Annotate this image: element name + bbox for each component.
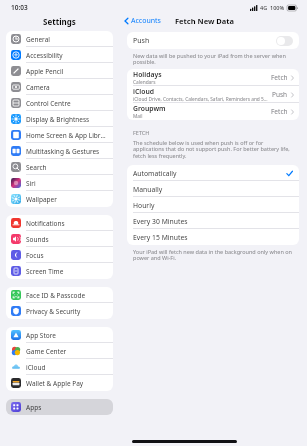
staticText: Every 30 Minutes <box>133 217 188 226</box>
button[interactable]: Screen Time <box>6 263 113 279</box>
button[interactable]: Control Centre <box>6 95 113 111</box>
button[interactable]: General <box>6 31 113 47</box>
staticText: Accounts <box>131 16 161 26</box>
button[interactable]: Sounds <box>6 231 113 247</box>
button[interactable]: Groupwm <box>127 103 299 120</box>
staticText: Hourly <box>133 201 155 210</box>
button[interactable]: Accounts <box>122 15 163 27</box>
button[interactable]: Accessibility <box>6 47 113 63</box>
staticText: Face ID & Passcode <box>26 291 86 300</box>
staticText: App Store <box>26 331 56 340</box>
staticText: Home Screen & App Library <box>26 131 109 140</box>
button[interactable]: Wallet & Apple Pay <box>6 375 113 391</box>
button[interactable]: Focus <box>6 247 113 263</box>
button[interactable]: Display & Brightness <box>6 111 113 127</box>
staticText: Every 15 Minutes <box>133 233 188 242</box>
staticText: Your iPad will fetch new data in the bac… <box>133 248 293 262</box>
button[interactable]: Manually <box>127 181 299 197</box>
staticText: Privacy & Security <box>26 307 81 316</box>
staticText: Fetch New Data <box>175 16 235 26</box>
staticText: Holidays <box>133 70 162 79</box>
staticText: Mail <box>133 113 143 120</box>
staticText: Notifications <box>26 219 65 228</box>
staticText: Display & Brightness <box>26 115 90 124</box>
staticText: Manually <box>133 185 163 194</box>
button[interactable]: Notifications <box>6 215 113 231</box>
staticText: Focus <box>26 251 44 260</box>
staticText: Push <box>133 36 150 46</box>
staticText: Control Centre <box>26 99 71 108</box>
staticText: Push <box>272 90 288 99</box>
staticText: FETCH <box>133 129 150 136</box>
button[interactable]: iCloud <box>6 359 113 375</box>
staticText: Screen Time <box>26 267 64 276</box>
staticText: iCloud <box>133 87 154 96</box>
staticText: The schedule below is used when push is … <box>133 139 293 160</box>
staticText: 10:03 <box>11 3 28 12</box>
staticText: Apple Pencil <box>26 67 64 76</box>
button[interactable]: Siri <box>6 175 113 191</box>
staticText: Multitasking & Gestures <box>26 147 100 156</box>
staticText: Fetch <box>271 107 288 116</box>
button[interactable]: Every 30 Minutes <box>127 213 299 229</box>
staticText: Automatically <box>133 169 177 178</box>
staticText: 4G <box>260 4 268 11</box>
staticText: Siri <box>26 179 36 188</box>
staticText: Search <box>26 163 47 172</box>
button[interactable]: Multitasking & Gestures <box>6 143 113 159</box>
staticText: Wallet & Apple Pay <box>26 379 84 388</box>
button[interactable]: Holidays <box>127 69 299 86</box>
button[interactable]: Face ID & Passcode <box>6 287 113 303</box>
staticText: 100% <box>270 4 285 11</box>
button[interactable]: Push <box>127 32 299 49</box>
staticText: Apps <box>26 403 42 412</box>
staticText: iCloud <box>26 363 46 372</box>
button[interactable]: Search <box>6 159 113 175</box>
button[interactable]: iCloud <box>127 86 299 103</box>
button[interactable]: Push toggle <box>276 36 293 46</box>
button[interactable]: Hourly <box>127 197 299 213</box>
button[interactable]: App Store <box>6 327 113 343</box>
staticText: New data will be pushed to your iPad fro… <box>133 52 293 66</box>
staticText: Camera <box>26 83 50 92</box>
button[interactable]: Game Center <box>6 343 113 359</box>
staticText: iCloud Drive, Contacts, Calendars, Safar… <box>133 96 268 103</box>
button[interactable]: Apple Pencil <box>6 63 113 79</box>
button[interactable]: Every 15 Minutes <box>127 229 299 245</box>
button[interactable]: Wallpaper <box>6 191 113 207</box>
staticText: Settings <box>43 16 76 27</box>
button[interactable]: Apps <box>6 399 113 415</box>
button[interactable]: Automatically <box>127 165 299 181</box>
staticText: Accessibility <box>26 51 63 60</box>
button[interactable]: Home Screen & App Library <box>6 127 113 143</box>
staticText: Fetch <box>271 73 288 82</box>
staticText: Game Center <box>26 347 67 356</box>
staticText: Wallpaper <box>26 195 57 204</box>
staticText: Sounds <box>26 235 49 244</box>
staticText: General <box>26 35 50 44</box>
staticText: Groupwm <box>133 104 166 113</box>
button[interactable]: Privacy & Security <box>6 303 113 319</box>
button[interactable]: Camera <box>6 79 113 95</box>
staticText: Calendars <box>133 79 156 86</box>
